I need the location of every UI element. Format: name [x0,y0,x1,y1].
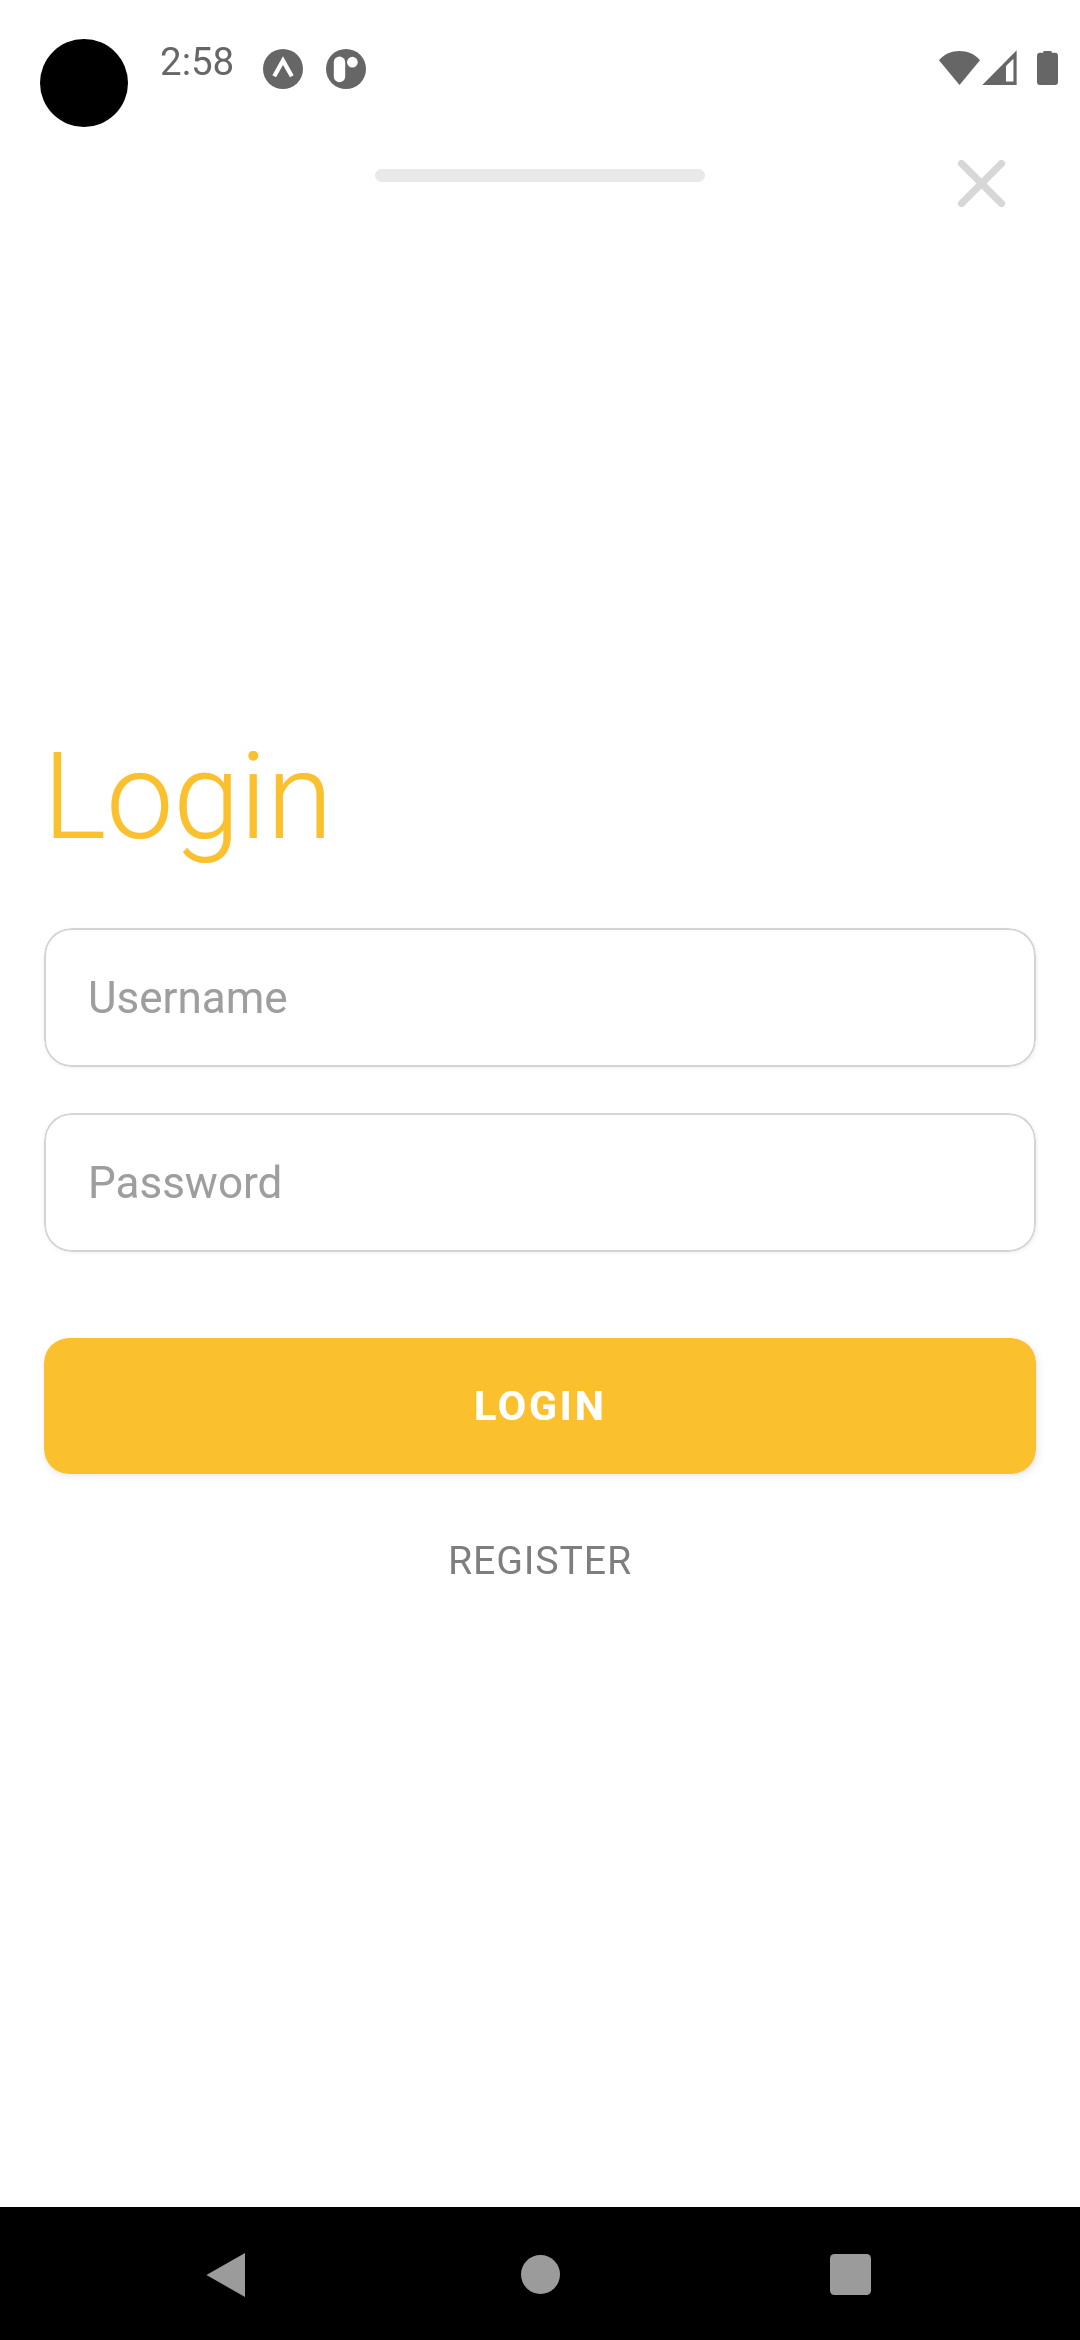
button[interactable]: Home [477,2211,604,2338]
button[interactable]: Back [162,2211,289,2338]
button[interactable]: Recent apps [787,2211,914,2338]
staticText: Login [43,727,333,868]
button[interactable]: Close [921,150,1042,216]
button[interactable]: Password [44,1113,1036,1252]
staticText: LOGIN [474,1382,607,1430]
staticText: Password [88,1157,283,1209]
staticText: 2:58 [160,39,235,84]
button[interactable]: LOGIN [44,1338,1036,1474]
button[interactable]: Username [44,928,1036,1067]
button[interactable]: REGISTER [44,1495,1036,1627]
staticText: REGISTER [448,1538,633,1584]
staticText: Username [88,972,288,1024]
